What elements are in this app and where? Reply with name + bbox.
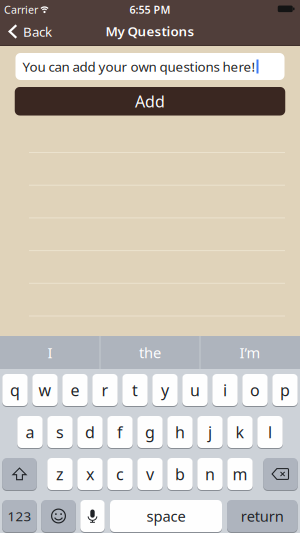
staticText: Back [23,23,52,40]
staticText: space [146,506,185,526]
staticText: y [161,379,169,401]
staticText: 6:55 PM [129,2,170,17]
button[interactable]: g [137,415,163,448]
button[interactable]: t [122,373,148,406]
staticText: w [38,379,51,401]
button[interactable]: Question text field [15,53,284,80]
button[interactable]: Numbers [2,499,37,532]
staticText: f [117,421,123,443]
staticText: return [241,506,284,526]
staticText: d [85,421,95,443]
button[interactable]: I’m [200,336,299,369]
button[interactable]: d [77,415,103,448]
button[interactable]: Delete [263,457,298,490]
button[interactable]: y [152,373,178,406]
staticText: c [116,463,124,485]
staticText: Add [135,91,165,112]
staticText: k [235,421,244,443]
button[interactable]: return [227,499,297,532]
staticText: p [280,379,290,401]
button[interactable]: q [2,373,28,406]
staticText: Carrier [4,2,38,17]
button[interactable]: p [272,373,298,406]
button[interactable]: e [62,373,88,406]
staticText: b [175,463,185,485]
staticText: q [10,379,20,401]
staticText: t [132,379,138,401]
button[interactable]: i [212,373,238,406]
staticText: g [145,421,155,443]
staticText: 123 [7,507,31,525]
button[interactable]: f [107,415,133,448]
button[interactable]: m [227,457,253,490]
staticText: i [223,379,227,401]
staticText: My Questions [105,22,194,40]
staticText: I [47,343,52,362]
button[interactable]: Back [8,17,52,45]
button[interactable]: j [197,415,223,448]
staticText: o [250,379,260,401]
button[interactable]: o [242,373,268,406]
staticText: e [70,379,79,401]
staticText: r [101,379,108,401]
button[interactable]: s [47,415,73,448]
button[interactable]: I [0,336,99,369]
staticText: a [25,421,34,443]
button[interactable]: x [77,457,103,490]
button[interactable]: n [197,457,223,490]
staticText: You can add your own questions here! [22,58,255,75]
button[interactable]: z [47,457,73,490]
staticText: m [232,463,247,485]
button[interactable]: space [110,499,222,532]
button[interactable]: w [32,373,58,406]
staticText: I’m [239,343,260,362]
button[interactable]: a [17,415,43,448]
staticText: s [56,421,64,443]
button[interactable]: k [227,415,253,448]
staticText: z [56,463,64,485]
button[interactable]: u [182,373,208,406]
staticText: v [146,463,154,485]
button[interactable]: Dictation [80,499,105,532]
button[interactable]: Shift [2,457,37,490]
staticText: n [205,463,215,485]
button[interactable]: the [100,336,199,369]
button[interactable]: b [167,457,193,490]
staticText: u [190,379,200,401]
button[interactable]: Add [15,87,285,115]
staticText: the [139,343,161,362]
staticText: l [268,421,272,443]
button[interactable]: l [257,415,283,448]
button[interactable]: h [167,415,193,448]
staticText: x [86,463,94,485]
button[interactable]: Emoji [41,499,76,532]
button[interactable]: v [137,457,163,490]
button[interactable]: r [92,373,118,406]
button[interactable]: c [107,457,133,490]
staticText: j [208,421,212,443]
staticText: h [175,421,185,443]
